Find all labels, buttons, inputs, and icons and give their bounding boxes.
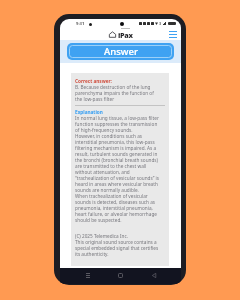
button[interactable]: Menu bbox=[168, 30, 178, 39]
button[interactable]: Recents bbox=[82, 270, 93, 281]
staticText: 3 bbox=[159, 21, 162, 26]
staticText: B. Because destruction of the lung paren… bbox=[75, 84, 154, 102]
staticText: Correct answer: bbox=[75, 78, 112, 84]
staticText: Answer bbox=[104, 45, 138, 58]
staticText: iPax bbox=[118, 30, 133, 40]
button[interactable]: Answer bbox=[67, 43, 174, 60]
staticText: (C) 2025 Telemedica Inc. This original s… bbox=[75, 233, 159, 257]
button[interactable]: iPax bbox=[109, 28, 133, 40]
button[interactable]: Home bbox=[115, 270, 126, 281]
staticText: In normal lung tissue, a low-pass filter… bbox=[75, 115, 160, 223]
button[interactable]: Back bbox=[148, 270, 159, 281]
staticText: 9:31 bbox=[76, 21, 85, 27]
staticText: Explanation bbox=[75, 109, 103, 115]
